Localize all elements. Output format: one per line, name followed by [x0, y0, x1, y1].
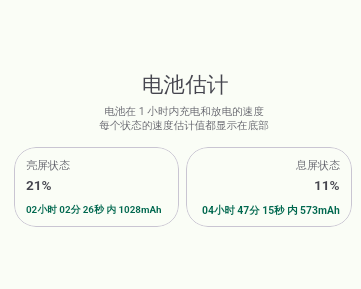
staticText: 04小时 47分 15秒 内 573mAh: [202, 204, 340, 217]
button[interactable]: 息屏状态: [186, 147, 352, 227]
staticText: 02小时 02分 26秒 内 1028mAh: [26, 204, 162, 216]
staticText: 21%: [26, 177, 52, 193]
staticText: 息屏状态: [296, 158, 340, 172]
staticText: 11%: [314, 177, 340, 193]
button[interactable]: 亮屏状态: [14, 147, 179, 227]
staticText: 亮屏状态: [26, 158, 70, 172]
staticText: 电池在 1 小时内充电和放电的速度 每个状态的速度估计值都显示在底部: [99, 105, 269, 132]
staticText: 电池估计: [142, 71, 229, 98]
